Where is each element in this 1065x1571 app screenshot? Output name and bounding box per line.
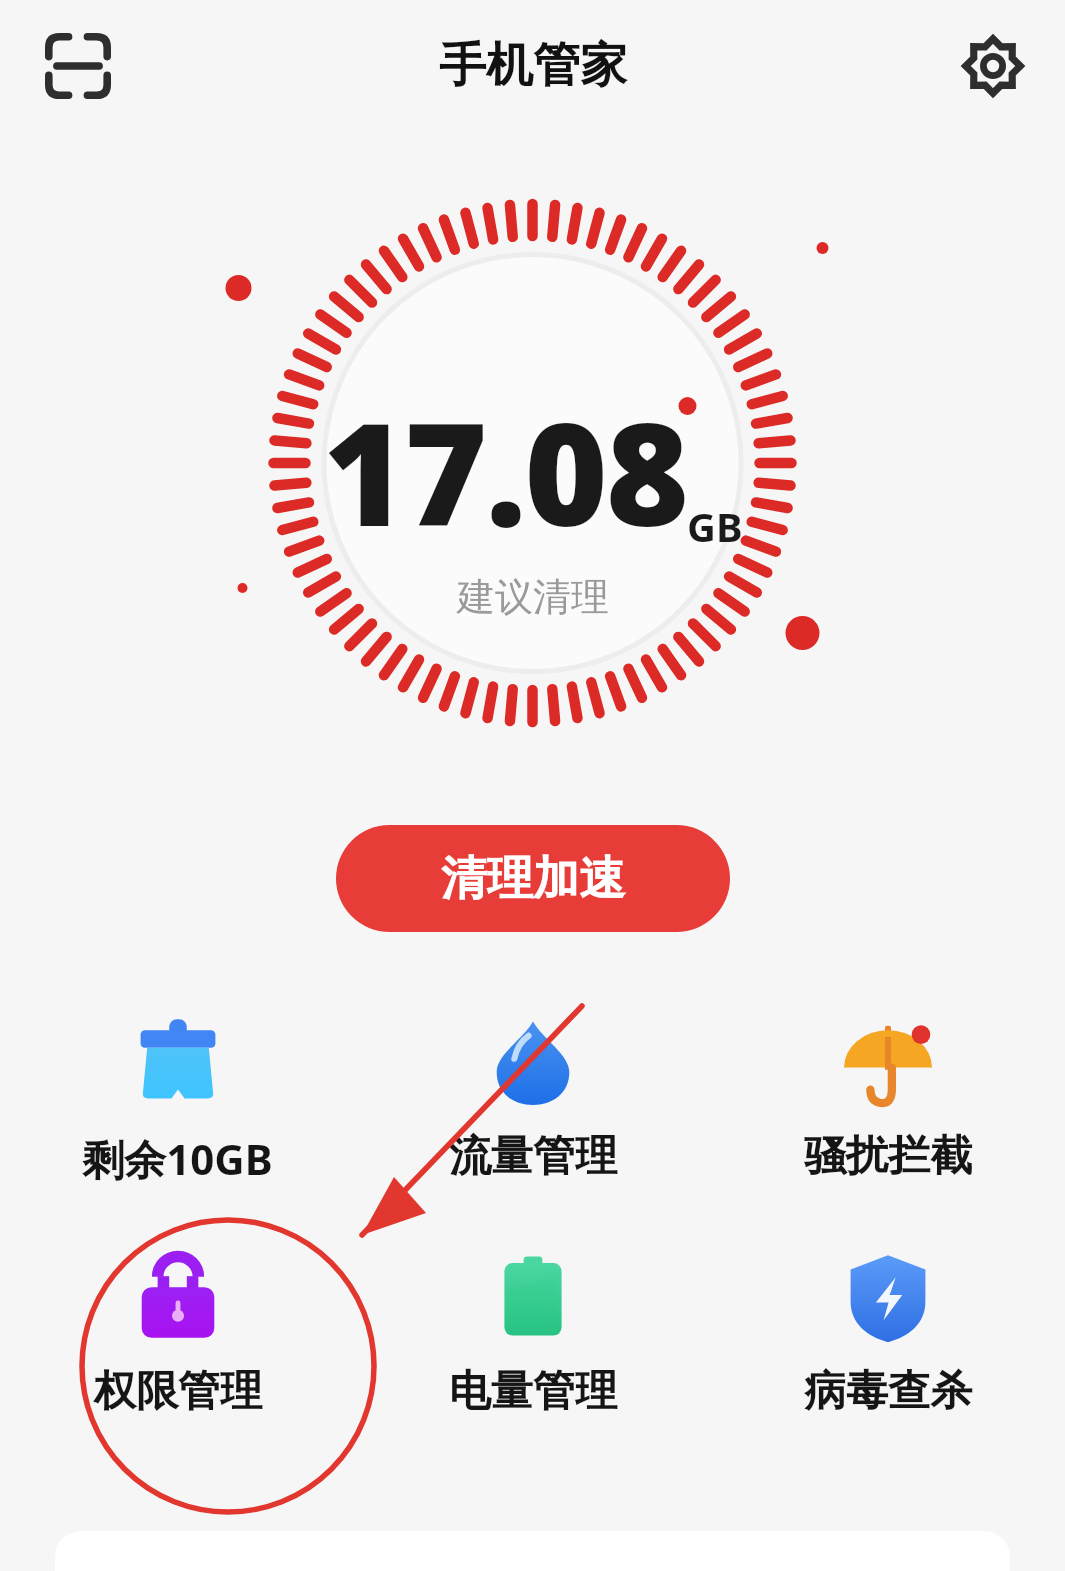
staticText: 剩余10GB	[82, 1130, 273, 1187]
staticText: 手机管家	[439, 36, 627, 95]
button[interactable]: 清理加速	[336, 825, 730, 932]
staticText: 建议清理	[457, 573, 609, 621]
button[interactable]: 权限管理	[0, 1235, 355, 1424]
staticText: 流量管理	[449, 1130, 617, 1183]
staticText: 权限管理	[94, 1365, 262, 1418]
staticText: 骚扰拦截	[804, 1130, 972, 1183]
staticText: 病毒查杀	[804, 1365, 972, 1418]
staticText: 17.08	[323, 374, 687, 567]
button[interactable]: 电量管理	[355, 1235, 710, 1424]
button[interactable]: 病毒查杀	[710, 1235, 1065, 1424]
button[interactable]: 流量管理	[355, 1000, 710, 1189]
staticText: GB	[687, 499, 743, 553]
button[interactable]: Scan	[26, 14, 130, 118]
button[interactable]: 骚扰拦截	[710, 1000, 1065, 1189]
button[interactable]: Settings	[941, 14, 1045, 118]
staticText: 清理加速	[441, 850, 625, 908]
staticText: 电量管理	[449, 1365, 617, 1418]
button[interactable]: 剩余10GB	[0, 1000, 355, 1193]
